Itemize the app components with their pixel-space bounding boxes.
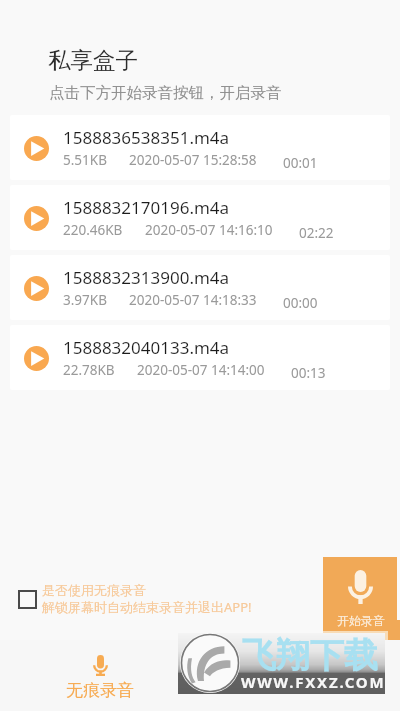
staticText: 220.46KB	[63, 221, 123, 239]
staticText: 无痕录音	[66, 680, 134, 701]
staticText: 1588832170196.m4a	[63, 196, 230, 219]
staticText: 00:13	[291, 364, 326, 382]
staticText: 2020-05-07 15:28:58	[129, 151, 257, 169]
button[interactable]: Play	[10, 115, 390, 180]
staticText: 3.97KB	[63, 291, 107, 309]
staticText: 00:00	[283, 294, 318, 312]
button[interactable]: Play	[10, 325, 390, 390]
staticText: 飞翔下载	[242, 634, 378, 677]
button[interactable]: Record	[50, 640, 150, 701]
staticText: 私享盒子	[48, 46, 138, 74]
staticText: 00:01	[283, 154, 318, 172]
other: Play	[24, 206, 49, 231]
staticText: 2020-05-07 14:16:10	[145, 221, 273, 239]
staticText: 点击下方开始录音按钮，开启录音	[49, 83, 282, 103]
other: Play	[24, 136, 49, 161]
staticText: 是否使用无痕录音	[42, 582, 146, 598]
other: Record	[348, 570, 373, 604]
other: Play	[24, 276, 49, 301]
button[interactable]: Record	[323, 557, 397, 631]
staticText: 1588832040133.m4a	[63, 336, 230, 359]
staticText: 2020-05-07 14:18:33	[129, 291, 257, 309]
staticText: 02:22	[299, 224, 334, 242]
button[interactable]: Use stealth recording	[18, 582, 252, 616]
button[interactable]: Play	[10, 185, 390, 250]
staticText: 1588836538351.m4a	[63, 126, 230, 149]
other: Record	[93, 655, 108, 676]
staticText: 开始录音	[337, 613, 385, 628]
other: Use stealth recording	[18, 590, 37, 609]
staticText: 解锁屏幕时自动结束录音并退出APP!	[42, 598, 252, 616]
staticText: WWW.FXXZ.COM	[241, 672, 386, 692]
staticText: 1588832313900.m4a	[63, 266, 230, 289]
staticText: 5.51KB	[63, 151, 107, 169]
button[interactable]: Play	[10, 255, 390, 320]
other: Play	[24, 346, 49, 371]
staticText: 2020-05-07 14:14:00	[137, 361, 265, 379]
staticText: 22.78KB	[63, 361, 115, 379]
